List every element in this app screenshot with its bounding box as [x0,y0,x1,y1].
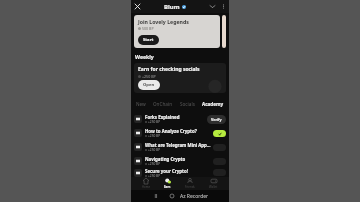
staticText: Blum [164,3,180,11]
staticText: +250 BP [148,134,161,138]
staticText: Az Recorder [180,193,209,200]
button[interactable]: Start task [213,144,226,151]
button[interactable]: What are Telegram Mini Apps? [134,140,226,154]
button[interactable] [222,15,226,48]
staticText: Earn [164,185,171,189]
staticText: 500 BP [142,26,154,31]
staticText: +250 BP [148,162,161,166]
button[interactable]: Home [139,177,153,190]
staticText: Join Lovely Legends [138,18,189,25]
staticText: Open [143,82,155,88]
staticText: Friends [185,185,195,189]
button[interactable]: Pause recording [151,191,161,201]
staticText: What are Telegram Mini Apps? [145,142,211,148]
staticText: +250 BP [148,120,161,124]
button[interactable]: Forks Explained [134,112,226,126]
button[interactable]: Completed [213,130,226,137]
staticText: Socials [180,101,195,107]
button[interactable]: Close [131,0,144,13]
staticText: New [136,101,146,107]
staticText: +250 BP [142,74,156,79]
button[interactable]: Academy [200,99,226,109]
staticText: Navigating Crypto [145,156,186,162]
button[interactable]: Earn [161,177,174,190]
staticText: Secure your Crypto! [145,168,188,174]
staticText: Earn for checking socials [138,66,200,73]
button[interactable]: Start task [213,169,226,176]
staticText: Academy [202,101,224,107]
button[interactable]: More options [218,1,229,12]
button[interactable]: Stop recording [167,191,177,201]
button[interactable]: Earn for checking socials [134,63,226,93]
staticText: How to Analyze Crypto? [145,128,197,134]
staticText: Weekly [135,53,154,60]
staticText: +250 BP [148,174,161,177]
button[interactable]: Friends [182,177,198,190]
staticText: Start [143,37,154,43]
button[interactable]: Join Lovely Legends [134,15,220,48]
button[interactable]: OnChain [151,99,175,109]
button[interactable]: How to Analyze Crypto? [134,126,226,140]
button[interactable]: Navigating Crypto [134,154,226,168]
button[interactable]: Wallet [206,177,221,190]
button[interactable]: New [134,99,148,109]
button[interactable]: Collapse [207,1,218,12]
button[interactable]: Start [138,35,159,45]
staticText: Forks Explained [145,114,180,120]
staticText: Home [142,185,150,189]
staticText: OnChain [153,101,173,107]
staticText: Wallet [209,185,218,189]
button[interactable]: Open [138,80,160,90]
staticText: +250 BP [148,148,161,152]
staticText: Verify [211,117,222,122]
button[interactable]: Socials [178,99,197,109]
button[interactable]: Secure your Crypto! [134,168,226,177]
button[interactable]: Verify [207,115,226,124]
button[interactable]: Start task [213,158,226,165]
